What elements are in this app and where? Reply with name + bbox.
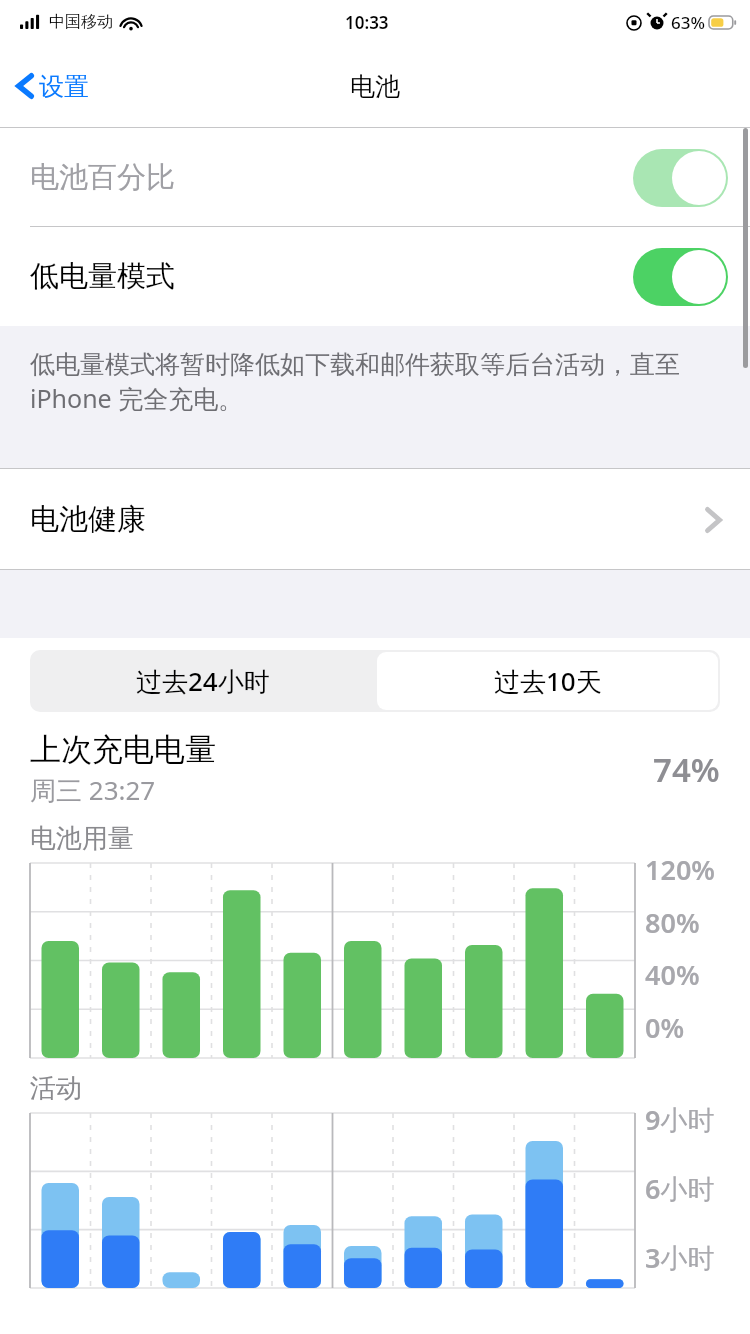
staticText: 周三 23:27: [30, 772, 156, 808]
staticText: 74%: [653, 747, 720, 792]
button[interactable]: 低电量模式: [0, 227, 750, 326]
staticText: 63%: [671, 11, 705, 34]
staticText: 设置: [39, 71, 89, 102]
staticText: 低电量模式: [30, 258, 175, 295]
staticText: 10:33: [345, 11, 389, 34]
staticText: 上次充电电量: [30, 730, 216, 769]
button[interactable]: 过去10天: [377, 652, 718, 710]
staticText: 3小时: [645, 1239, 715, 1276]
staticText: 中国移动: [49, 12, 113, 32]
button[interactable]: 设置: [8, 64, 97, 108]
staticText: 低电量模式将暂时降低如下载和邮件获取等后台活动，直至 iPhone 完全充电。: [30, 346, 710, 415]
button[interactable]: 过去24小时: [30, 650, 375, 712]
staticText: 9小时: [645, 1101, 715, 1138]
staticText: 电池用量: [30, 822, 134, 855]
staticText: 活动: [30, 1072, 82, 1105]
staticText: 80%: [645, 904, 700, 941]
staticText: 电池: [350, 71, 400, 102]
staticText: 40%: [645, 956, 700, 993]
staticText: 6小时: [645, 1170, 715, 1207]
button[interactable]: 电池健康: [0, 469, 750, 570]
button[interactable]: 电池百分比: [0, 128, 750, 227]
staticText: 120%: [645, 851, 715, 888]
staticText: 过去10天: [494, 663, 602, 699]
staticText: 过去24小时: [136, 663, 270, 699]
staticText: 电池健康: [30, 501, 146, 538]
staticText: 电池百分比: [30, 159, 175, 196]
staticText: 0%: [645, 1009, 685, 1046]
